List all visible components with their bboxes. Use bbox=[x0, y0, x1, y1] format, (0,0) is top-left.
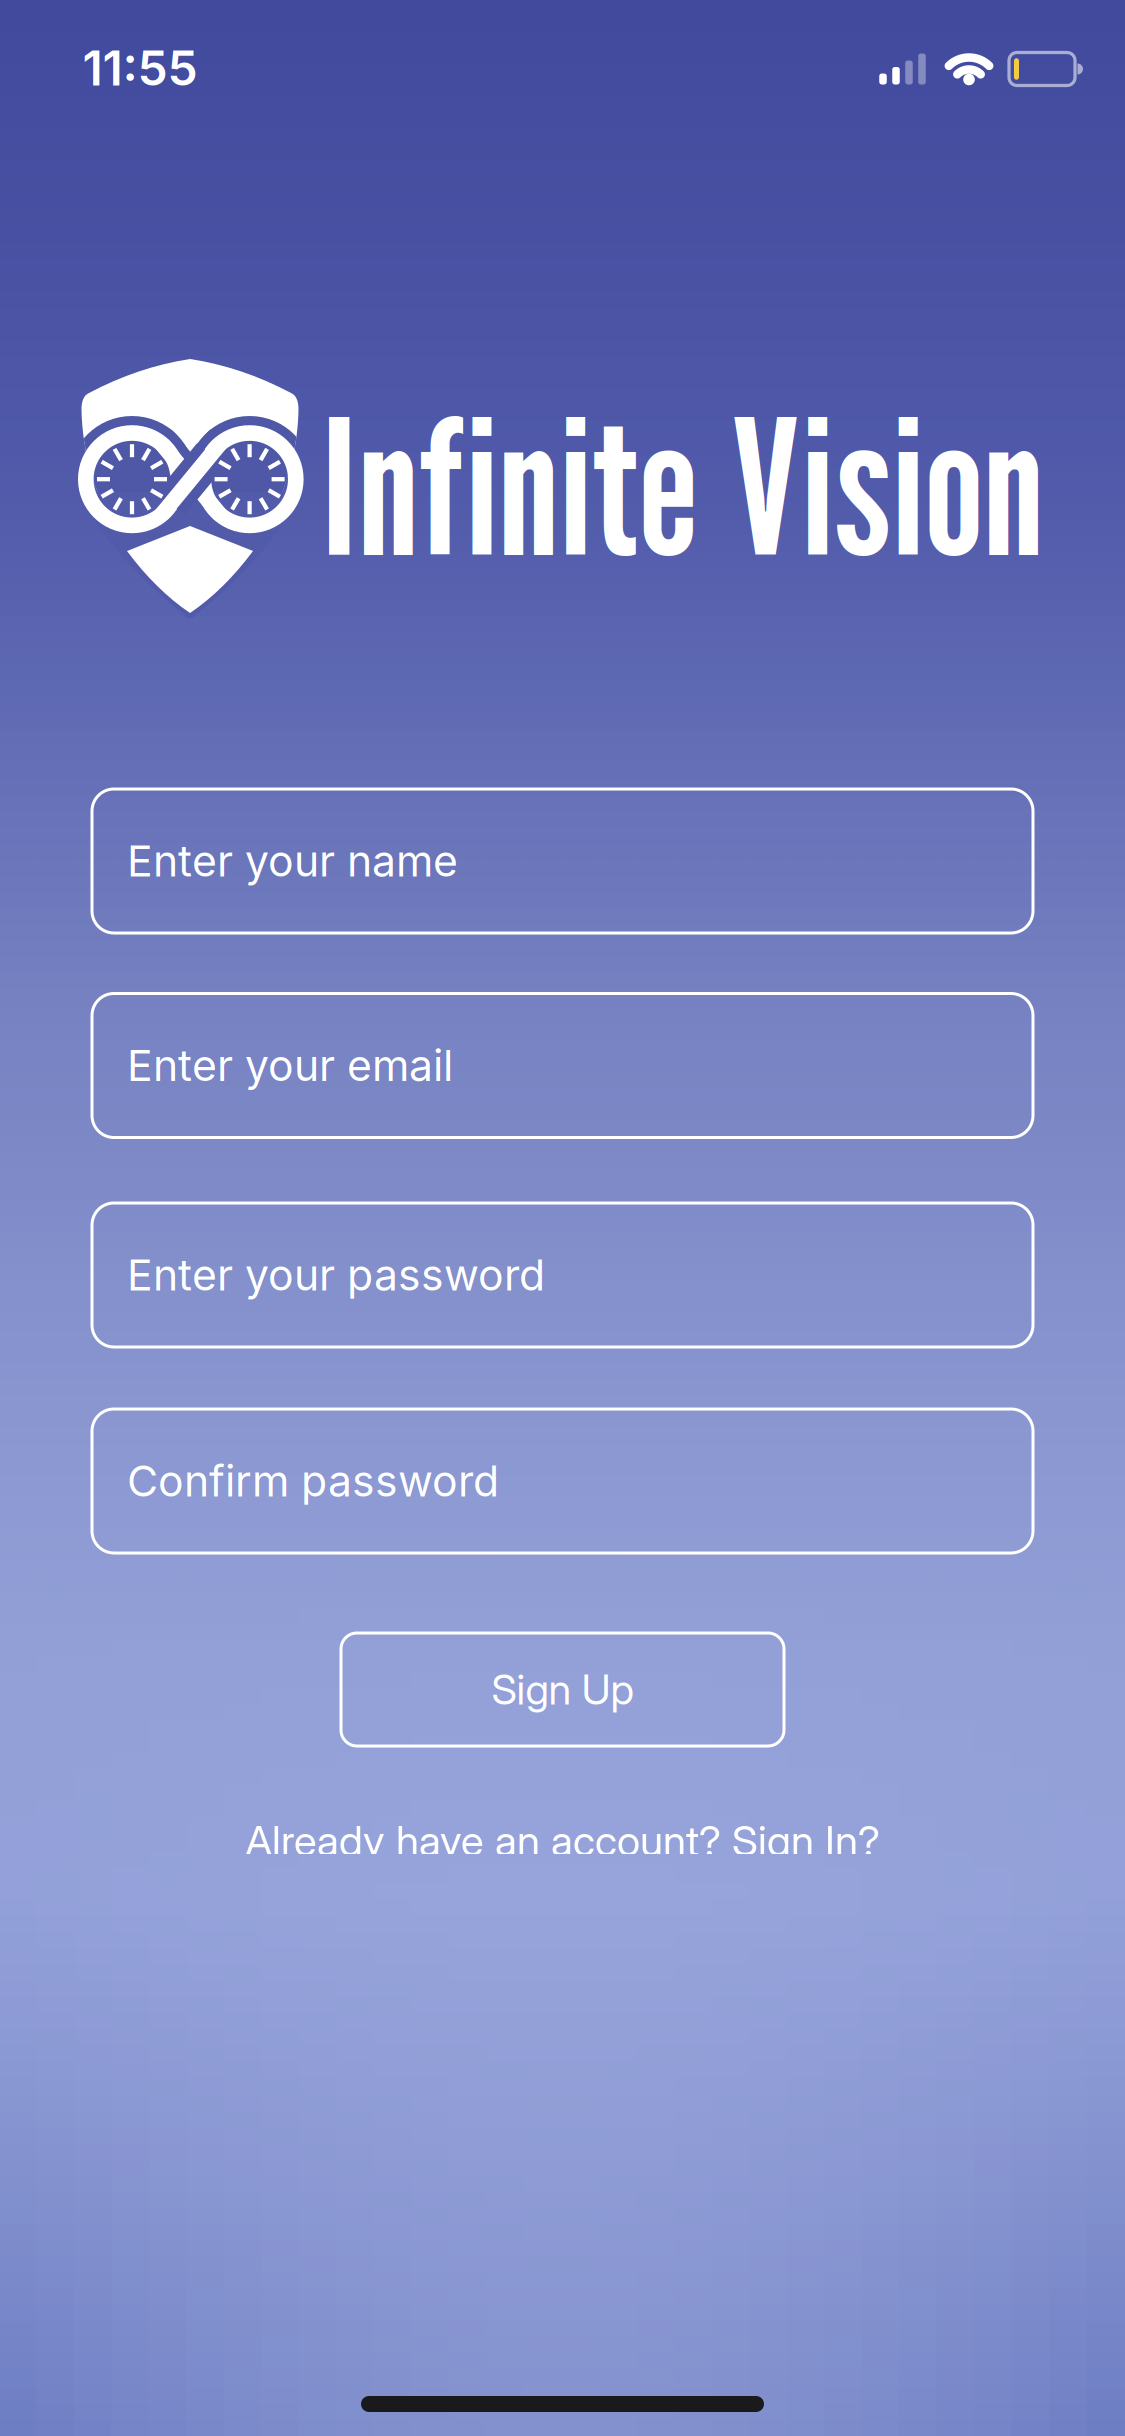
staticText: Enter your name bbox=[127, 835, 458, 887]
staticText: 11:55 bbox=[82, 39, 197, 97]
button[interactable]: Confirm password bbox=[92, 1409, 1033, 1553]
button[interactable]: Enter your password bbox=[92, 1203, 1033, 1347]
button[interactable]: Enter your email bbox=[92, 993, 1033, 1137]
staticText: Confirm password bbox=[127, 1455, 499, 1507]
staticText: Already have an account? Sign In? bbox=[245, 1815, 880, 1866]
button[interactable]: Already have an account? Sign In? bbox=[62, 1815, 1062, 1854]
staticText: Enter your password bbox=[127, 1249, 545, 1301]
staticText: Sign Up bbox=[491, 1664, 633, 1714]
button[interactable]: Sign Up bbox=[341, 1633, 784, 1746]
button[interactable]: Enter your name bbox=[92, 789, 1033, 933]
staticText: Enter your email bbox=[127, 1040, 453, 1091]
staticText: Infinite Vision bbox=[321, 373, 1043, 599]
